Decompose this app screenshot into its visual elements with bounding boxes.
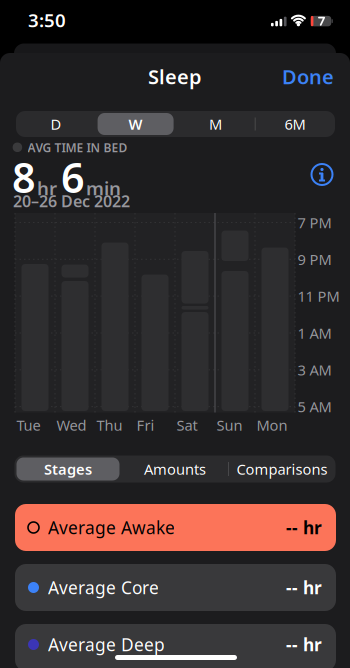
staticText: Average Core (48, 576, 159, 599)
button[interactable] (308, 160, 336, 188)
button[interactable]: W (96, 111, 175, 137)
staticText: min (86, 176, 121, 200)
staticText: Tue (16, 415, 40, 435)
button[interactable]: 6M (256, 111, 335, 137)
staticText: 9 PM (297, 250, 331, 269)
staticText: 6M (285, 114, 306, 134)
staticText: -- hr (286, 633, 322, 656)
staticText: 6 (61, 150, 85, 204)
staticText: 11 PM (297, 286, 339, 306)
button[interactable]: Done (254, 61, 334, 91)
staticText: -- hr (286, 516, 322, 539)
staticText: Average Awake (48, 516, 175, 539)
staticText: hr (37, 176, 57, 200)
staticText: 5 AM (297, 397, 331, 416)
staticText: Wed (56, 415, 86, 435)
staticText: Done (282, 63, 334, 90)
staticText: 7 PM (297, 213, 331, 232)
button[interactable]: Average Awake (15, 504, 336, 551)
staticText: Sleep (148, 63, 202, 90)
staticText: 8 (12, 150, 36, 204)
button[interactable]: M (176, 111, 255, 137)
staticText: Comparisons (236, 459, 327, 479)
staticText: Sat (176, 415, 197, 435)
staticText: Mon (256, 415, 287, 435)
staticText: Average Deep (48, 633, 165, 656)
staticText: Amounts (144, 459, 206, 479)
staticText: W (129, 114, 143, 134)
staticText: M (209, 114, 222, 134)
button[interactable]: Average Core (15, 564, 336, 611)
button[interactable]: Comparisons (228, 455, 335, 482)
staticText: 3:50 (28, 8, 66, 32)
staticText: Stages (44, 459, 92, 479)
staticText: Fri (136, 415, 154, 435)
staticText: Sun (216, 415, 242, 435)
staticText: 1 AM (297, 323, 331, 343)
staticText: D (50, 114, 61, 134)
staticText: AVG TIME IN BED (27, 139, 127, 155)
button[interactable]: Stages (14, 455, 121, 482)
staticText: -- hr (286, 576, 322, 599)
button[interactable]: Average Deep (15, 624, 336, 668)
staticText: 3 AM (297, 360, 331, 380)
staticText: 20–26 Dec 2022 (13, 190, 130, 212)
button[interactable]: Amounts (121, 455, 228, 482)
button[interactable]: D (16, 111, 95, 137)
staticText: Thu (96, 415, 122, 435)
